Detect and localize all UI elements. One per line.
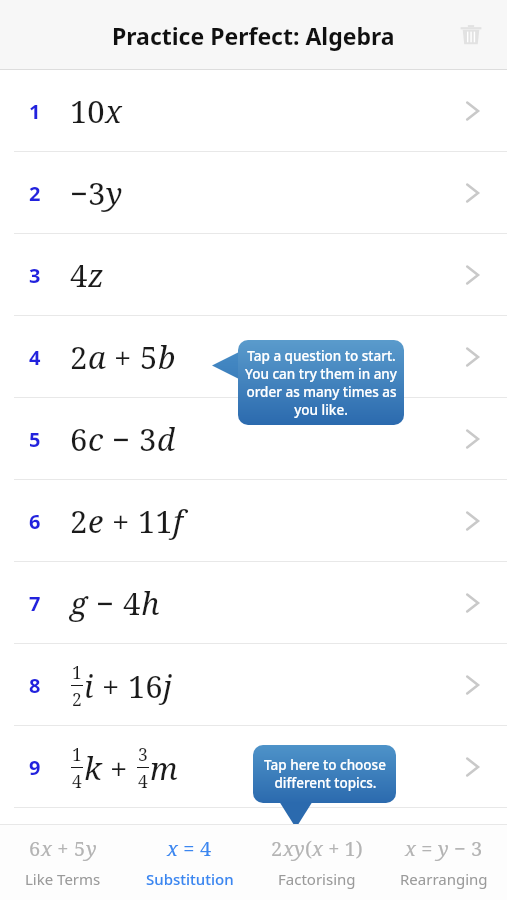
staticText: 9 xyxy=(29,754,41,781)
staticText: 3 xyxy=(139,418,157,460)
staticText: ( xyxy=(305,835,312,862)
staticText: 4 xyxy=(200,835,212,862)
staticText: 10 xyxy=(70,90,105,132)
staticText: h xyxy=(141,582,160,624)
staticText: 1 xyxy=(72,660,82,684)
staticText: x xyxy=(105,90,122,132)
button[interactable]: x xyxy=(380,824,507,900)
staticText: Rearranging xyxy=(400,869,488,889)
staticText: x xyxy=(312,835,323,862)
staticText: + xyxy=(104,500,138,542)
button[interactable]: 4 xyxy=(0,316,507,398)
staticText: 4 xyxy=(138,769,148,793)
button[interactable]: 2 xyxy=(253,824,380,900)
staticText: you like. xyxy=(294,401,348,419)
staticText: x xyxy=(167,835,178,862)
staticText: + xyxy=(102,747,136,789)
staticText: c xyxy=(88,418,104,460)
staticText: 6 xyxy=(70,418,88,460)
staticText: 7 xyxy=(29,590,41,617)
staticText: − xyxy=(88,582,123,624)
staticText: + xyxy=(94,665,128,707)
button[interactable]: 1 xyxy=(0,70,507,152)
staticText: d xyxy=(157,418,175,460)
staticText: + xyxy=(52,835,74,862)
staticText: 1 xyxy=(29,98,41,125)
button[interactable]: 8 xyxy=(0,644,507,726)
button[interactable]: Clear progress xyxy=(453,17,489,53)
staticText: z xyxy=(88,254,104,296)
staticText: Tap a question to start. xyxy=(247,347,396,365)
staticText: 2 xyxy=(271,835,283,862)
staticText: 2 xyxy=(29,180,41,207)
staticText: x xyxy=(405,835,416,862)
staticText: Factorising xyxy=(278,869,356,889)
staticText: 4 xyxy=(70,254,88,296)
staticText: 3 xyxy=(29,262,41,289)
staticText: order as many times as xyxy=(246,383,397,401)
staticText: 8 xyxy=(29,672,41,699)
staticText: f xyxy=(173,500,183,542)
button[interactable]: 9 xyxy=(0,726,507,808)
staticText: y xyxy=(438,835,449,862)
staticText: + xyxy=(106,336,140,378)
staticText: 5 xyxy=(74,835,86,862)
staticText: y xyxy=(86,835,97,862)
staticText: 11 xyxy=(138,500,173,542)
staticText: 5 xyxy=(29,426,41,453)
staticText: = xyxy=(416,835,438,862)
staticText: 5 xyxy=(140,336,158,378)
staticText: − xyxy=(104,418,139,460)
staticText: 1 xyxy=(72,742,82,766)
staticText: 4 xyxy=(123,582,141,624)
button[interactable]: 2 xyxy=(0,152,507,234)
staticText: j xyxy=(163,665,173,707)
staticText: 2 xyxy=(70,336,88,378)
staticText: = xyxy=(178,835,200,862)
staticText: Practice Perfect: Algebra xyxy=(112,20,395,51)
staticText: 3 xyxy=(471,835,483,862)
staticText: 6 xyxy=(29,508,41,535)
staticText: x xyxy=(41,835,52,862)
staticText: You can try them in any xyxy=(245,365,397,383)
staticText: g xyxy=(70,582,88,624)
staticText: y xyxy=(106,172,123,214)
staticText: 4 xyxy=(29,344,41,371)
staticText: 16 xyxy=(128,665,163,707)
staticText: a xyxy=(88,336,106,378)
staticText: xy xyxy=(283,835,305,862)
staticText: 4 xyxy=(72,769,82,793)
staticText: 3 xyxy=(138,742,148,766)
button[interactable]: 6 xyxy=(0,480,507,562)
staticText: e xyxy=(88,500,104,542)
button[interactable]: 5 xyxy=(0,398,507,480)
staticText: different topics. xyxy=(274,774,377,792)
button[interactable]: x xyxy=(126,824,253,900)
button[interactable]: 7 xyxy=(0,562,507,644)
button[interactable]: 3 xyxy=(0,234,507,316)
staticText: i xyxy=(84,665,94,707)
staticText: 2 xyxy=(70,500,88,542)
staticText: 2 xyxy=(72,687,82,711)
button[interactable]: 6 xyxy=(0,824,126,900)
staticText: Substitution xyxy=(146,869,234,889)
staticText: Like Terms xyxy=(25,869,101,889)
staticText: b xyxy=(158,336,176,378)
staticText: k xyxy=(84,747,102,789)
staticText: − xyxy=(449,835,471,862)
staticText: + 1) xyxy=(323,835,363,862)
staticText: 6 xyxy=(29,835,41,862)
staticText: m xyxy=(150,747,178,789)
staticText: Tap here to choose xyxy=(264,756,386,774)
staticText: −3 xyxy=(70,172,106,214)
